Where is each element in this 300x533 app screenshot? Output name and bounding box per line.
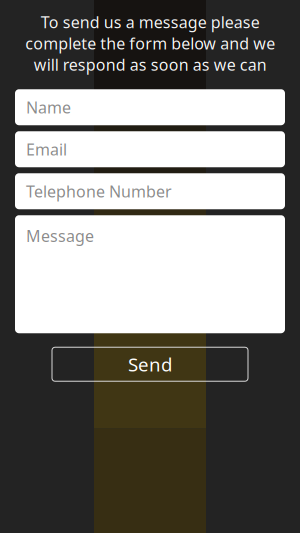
staticText: Email [26,139,67,160]
staticText: To send us a message please complete the… [25,11,275,75]
button[interactable]: Telephone Number [15,173,285,209]
button[interactable]: Name [15,89,285,125]
staticText: Message [26,225,94,246]
staticText: Telephone Number [26,181,172,202]
button[interactable]: Send [52,347,248,381]
staticText: Name [26,97,71,118]
staticText: Send [128,352,172,377]
button[interactable]: Message [15,215,285,333]
button[interactable]: Email [15,131,285,167]
